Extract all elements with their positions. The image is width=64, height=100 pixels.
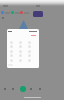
button[interactable]: Add [20, 86, 26, 92]
button[interactable]: Profile [37, 86, 43, 92]
button[interactable]: Home [2, 86, 8, 92]
button[interactable]: Search [10, 86, 16, 92]
button[interactable]: Notifications [28, 86, 34, 92]
button[interactable] [11, 11, 20, 14]
button[interactable] [20, 11, 29, 14]
button[interactable]: Upgrade [33, 11, 43, 17]
button[interactable] [1, 11, 10, 14]
